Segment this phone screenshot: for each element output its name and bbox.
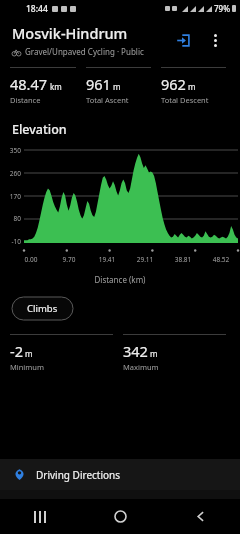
staticText: 19.41: [88, 255, 126, 264]
staticText: m: [150, 348, 158, 359]
staticText: km: [50, 81, 62, 92]
button[interactable]: Open in app: [170, 27, 196, 53]
staticText: 48.52: [202, 255, 240, 264]
staticText: 38.81: [164, 255, 202, 264]
staticText: -2: [10, 341, 23, 361]
staticText: m: [25, 348, 33, 359]
staticText: Distance: [10, 95, 41, 105]
staticText: m: [188, 81, 196, 92]
staticText: -10: [11, 237, 21, 246]
staticText: 18:44: [26, 3, 48, 15]
staticText: 350: [9, 146, 21, 155]
staticText: Total Descent: [161, 95, 209, 105]
button[interactable]: Recent apps: [0, 499, 80, 534]
staticText: Gravel/Unpaved Cycling · Public: [25, 46, 144, 57]
staticText: 342: [123, 341, 148, 361]
staticText: Distance (km): [0, 274, 240, 285]
staticText: 260: [9, 169, 21, 178]
staticText: 170: [9, 192, 21, 201]
staticText: Total Ascent: [86, 95, 129, 105]
staticText: Maximum: [123, 362, 159, 372]
staticText: 48.47: [10, 74, 48, 94]
staticText: 80: [13, 214, 21, 223]
staticText: Climbs: [27, 302, 58, 315]
staticText: 962: [161, 74, 186, 94]
staticText: Minimum: [10, 362, 44, 372]
staticText: Mosvik-Hindrum: [12, 23, 128, 43]
button[interactable]: More options: [202, 27, 228, 53]
staticText: 9.70: [50, 255, 88, 264]
button[interactable]: Home: [80, 499, 160, 534]
button[interactable]: Climbs: [12, 297, 73, 320]
staticText: 961: [86, 74, 111, 94]
staticText: 29.11: [126, 255, 164, 264]
staticText: 79%: [214, 3, 230, 14]
staticText: Driving Directions: [36, 468, 121, 482]
button[interactable]: Back: [160, 499, 240, 534]
staticText: 0.00: [12, 255, 50, 264]
staticText: Elevation: [12, 121, 67, 138]
staticText: m: [113, 81, 121, 92]
button[interactable]: Driving Directions: [0, 459, 240, 490]
